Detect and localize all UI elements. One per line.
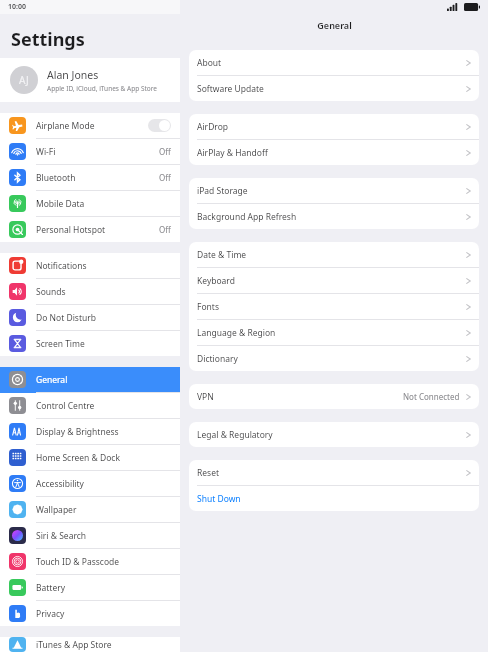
staticText: Do Not Disturb [36, 312, 171, 324]
staticText: Dictionary [197, 353, 466, 365]
staticText: Off [159, 224, 171, 235]
staticText: Apple ID, iCloud, iTunes & App Store [47, 84, 157, 93]
staticText: Control Centre [36, 400, 171, 412]
staticText: About [197, 57, 466, 69]
staticText: Software Update [197, 83, 466, 95]
button[interactable]: Screen Time [0, 331, 180, 356]
button[interactable]: Mobile Data [0, 191, 180, 216]
staticText: VPN [197, 391, 403, 403]
button[interactable]: Date & Time [189, 242, 479, 267]
button[interactable]: Bluetooth [0, 165, 180, 190]
button[interactable]: Reset [189, 460, 479, 485]
button[interactable]: Control Centre [0, 393, 180, 418]
staticText: Screen Time [36, 338, 171, 350]
staticText: Bluetooth [36, 172, 159, 184]
staticText: AJ [19, 73, 29, 87]
staticText: Display & Brightness [36, 426, 171, 438]
button[interactable]: Home Screen & Dock [0, 445, 180, 470]
staticText: Accessibility [36, 478, 171, 490]
staticText: Home Screen & Dock [36, 452, 171, 464]
staticText: Background App Refresh [197, 211, 466, 223]
button[interactable]: Language & Region [189, 320, 479, 345]
staticText: Privacy [36, 608, 171, 620]
button[interactable]: Sounds [0, 279, 180, 304]
button[interactable]: Keyboard [189, 268, 479, 293]
staticText: Reset [197, 467, 466, 479]
button[interactable]: Legal & Regulatory [189, 422, 479, 447]
button[interactable]: Touch ID & Passcode [0, 549, 180, 574]
button[interactable]: Privacy [0, 601, 180, 626]
staticText: Fonts [197, 301, 466, 313]
button[interactable]: iPad Storage [189, 178, 479, 203]
staticText: General [36, 374, 171, 386]
button[interactable]: Fonts [189, 294, 479, 319]
staticText: Date & Time [197, 249, 466, 261]
button[interactable]: Dictionary [189, 346, 479, 371]
staticText: Off [159, 172, 171, 183]
staticText: Notifications [36, 260, 171, 272]
staticText: iPad Storage [197, 185, 466, 197]
staticText: Sounds [36, 286, 171, 298]
staticText: Siri & Search [36, 530, 171, 542]
button[interactable]: Siri & Search [0, 523, 180, 548]
staticText: Language & Region [197, 327, 466, 339]
staticText: Touch ID & Passcode [36, 556, 171, 568]
staticText: Mobile Data [36, 198, 171, 210]
button[interactable]: Notifications [0, 253, 180, 278]
button[interactable]: iTunes & App Store [0, 637, 180, 652]
button[interactable]: General [0, 367, 180, 392]
staticText: Not Connected [403, 391, 460, 402]
button[interactable]: Do Not Disturb [0, 305, 180, 330]
button[interactable]: AirDrop [189, 114, 479, 139]
staticText: Settings [11, 27, 85, 52]
staticText: AirDrop [197, 121, 466, 133]
button[interactable]: Accessibility [0, 471, 180, 496]
staticText: AirPlay & Handoff [197, 147, 466, 159]
button[interactable]: Wi-Fi [0, 139, 180, 164]
staticText: Airplane Mode [36, 120, 148, 132]
staticText: General [317, 19, 352, 31]
staticText: Wi-Fi [36, 146, 159, 158]
button[interactable]: Display & Brightness [0, 419, 180, 444]
staticText: 10:00 [8, 2, 26, 12]
button[interactable]: VPN [189, 384, 479, 409]
button[interactable]: AJ [0, 58, 180, 102]
staticText: Off [159, 146, 171, 157]
button[interactable]: Shut Down [189, 486, 479, 511]
button[interactable]: Personal Hotspot [0, 217, 180, 242]
staticText: Battery [36, 582, 171, 594]
staticText: iTunes & App Store [36, 639, 171, 651]
staticText: Alan Jones [47, 68, 99, 82]
staticText: Shut Down [197, 493, 471, 505]
staticText: Keyboard [197, 275, 466, 287]
button[interactable]: AirPlay & Handoff [189, 140, 479, 165]
button[interactable]: About [189, 50, 479, 75]
button[interactable]: Wallpaper [0, 497, 180, 522]
button[interactable]: Battery [0, 575, 180, 600]
staticText: Legal & Regulatory [197, 429, 466, 441]
button[interactable]: Airplane Mode [0, 113, 180, 138]
button[interactable]: Background App Refresh [189, 204, 479, 229]
button[interactable]: Software Update [189, 76, 479, 101]
staticText: Wallpaper [36, 504, 171, 516]
staticText: Personal Hotspot [36, 224, 159, 236]
